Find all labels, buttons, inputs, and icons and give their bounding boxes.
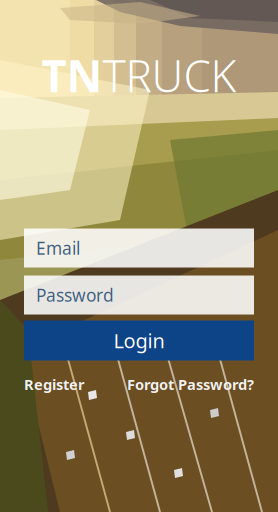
button[interactable]: Forgot Password?	[127, 374, 254, 394]
staticText: Password	[36, 283, 114, 306]
button[interactable]: Login	[24, 320, 254, 360]
staticText: Login	[113, 327, 164, 354]
staticText: Forgot Password?	[127, 374, 254, 394]
staticText: TRUCK	[102, 46, 236, 104]
button[interactable]: Register	[24, 374, 85, 394]
staticText: Register	[24, 374, 85, 394]
staticText: TN	[41, 46, 102, 104]
staticText: Email	[36, 236, 80, 259]
